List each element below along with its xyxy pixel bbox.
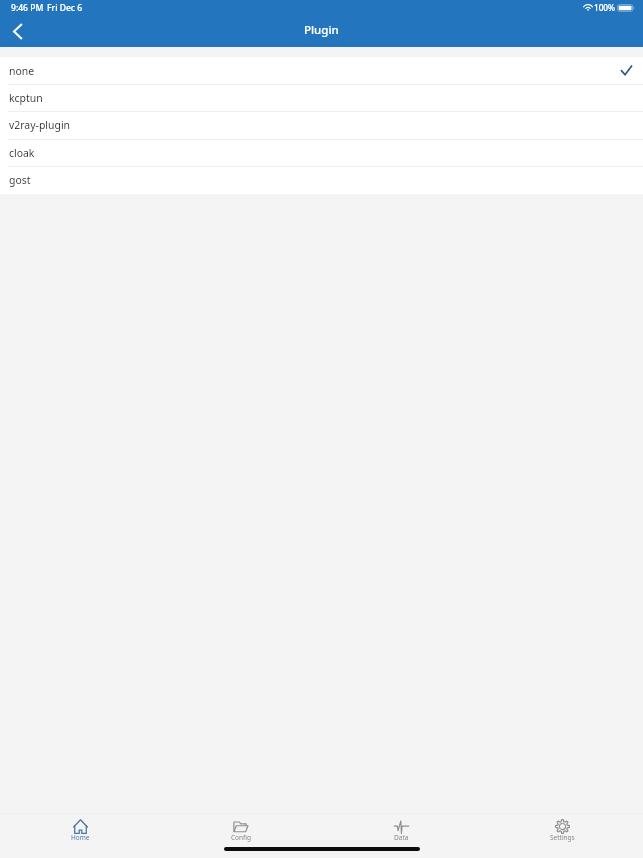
staticText: 9:46 PM <box>11 2 44 14</box>
staticText: none <box>9 64 35 78</box>
staticText: Plugin <box>304 22 339 38</box>
button[interactable]: Back <box>0 16 34 47</box>
button[interactable]: gost <box>0 166 643 194</box>
staticText: Data <box>394 833 409 842</box>
staticText: Settings <box>550 833 575 842</box>
staticText: gost <box>9 173 31 187</box>
button[interactable]: Settings <box>482 814 643 858</box>
staticText: Config <box>231 833 251 842</box>
staticText: cloak <box>9 146 35 160</box>
staticText: kcptun <box>9 91 43 105</box>
button[interactable]: Data <box>321 814 482 858</box>
staticText: Home <box>71 833 90 842</box>
button[interactable]: Config <box>160 814 321 858</box>
button[interactable]: none <box>0 57 643 84</box>
button[interactable]: v2ray-plugin <box>0 111 643 139</box>
button[interactable]: cloak <box>0 139 643 166</box>
button[interactable]: kcptun <box>0 84 643 111</box>
staticText: Fri Dec 6 <box>47 2 83 14</box>
staticText: 100% <box>594 2 616 13</box>
button[interactable]: Home <box>0 814 160 858</box>
staticText: v2ray-plugin <box>9 118 71 132</box>
